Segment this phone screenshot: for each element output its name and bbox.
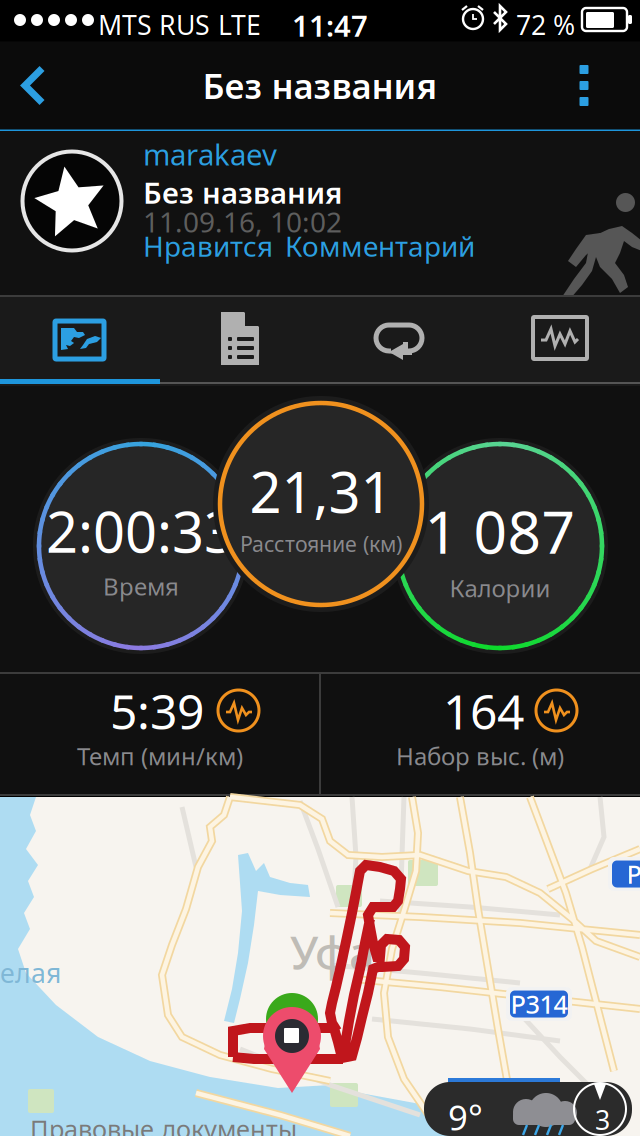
staticText: Без названия xyxy=(202,62,437,108)
staticText: MTS RUS xyxy=(98,7,210,42)
button[interactable]: Back xyxy=(3,52,65,118)
staticText: 72 % xyxy=(516,7,575,42)
staticText: 3 xyxy=(595,1102,610,1136)
staticText: P3 xyxy=(626,857,640,891)
staticText: 5:39 xyxy=(110,679,204,743)
button[interactable]: Graphs xyxy=(480,297,640,386)
staticText: Правовые документы xyxy=(30,1112,297,1136)
staticText: marakaev xyxy=(143,134,277,173)
staticText: 1 087 xyxy=(424,492,575,570)
button[interactable]: Details xyxy=(160,297,320,386)
button[interactable]: Laps xyxy=(320,297,480,386)
staticText: Комментарий xyxy=(285,227,475,265)
staticText: 11:47 xyxy=(292,6,368,45)
staticText: 9° xyxy=(448,1094,483,1136)
button[interactable]: Map xyxy=(0,297,160,386)
staticText: Калории xyxy=(449,572,550,604)
staticText: Набор выс. (м) xyxy=(396,740,564,772)
staticText: 2:00:33 xyxy=(46,494,236,568)
staticText: Уфа xyxy=(290,922,375,982)
staticText: 11.09.16, 10:02 xyxy=(143,203,342,240)
staticText: Белая xyxy=(0,955,61,990)
staticText: Темп (мин/км) xyxy=(77,740,243,772)
button[interactable]: marakaev xyxy=(143,138,279,170)
button[interactable]: More options xyxy=(555,52,613,118)
staticText: Нравится xyxy=(143,227,273,265)
staticText: P314 xyxy=(510,987,567,1021)
staticText: Без названия xyxy=(143,173,342,212)
staticText: 164 xyxy=(443,679,524,743)
button[interactable]: Комментарий xyxy=(285,230,471,262)
staticText: Время xyxy=(103,570,179,602)
staticText: 21,31 xyxy=(249,454,392,529)
button[interactable]: Нравится xyxy=(143,230,269,262)
staticText: Расстояние (км) xyxy=(240,529,402,558)
staticText: LTE xyxy=(218,7,261,42)
